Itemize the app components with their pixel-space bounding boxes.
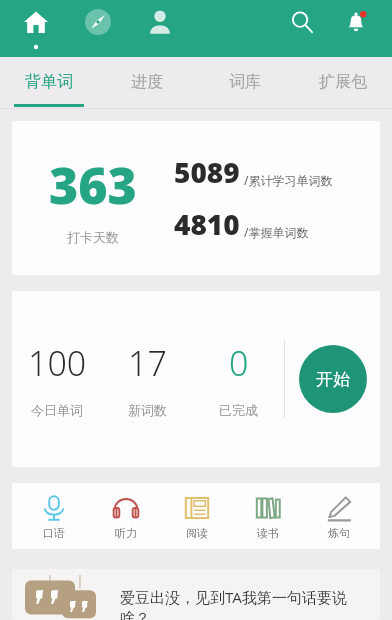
staticText: 17 xyxy=(128,340,167,386)
staticText: 已完成 xyxy=(219,402,258,418)
staticText: 爱豆出没，见到TA我第一句话要说啥？ xyxy=(120,587,370,620)
button[interactable]: Discover xyxy=(76,0,120,44)
button[interactable]: 词库 xyxy=(196,57,294,107)
staticText: 5089 xyxy=(174,153,240,191)
button[interactable]: 100 xyxy=(12,340,102,418)
button[interactable]: 进度 xyxy=(98,57,196,107)
staticText: 打卡天数 xyxy=(67,229,119,245)
button[interactable]: 口语 xyxy=(18,483,90,549)
staticText: /掌握单词数 xyxy=(244,224,309,240)
staticText: 读书 xyxy=(257,526,279,540)
staticText: 扩展包 xyxy=(319,72,367,92)
button[interactable]: 扩展包 xyxy=(294,57,392,107)
staticText: 阅读 xyxy=(186,526,208,540)
staticText: 新词数 xyxy=(128,402,167,418)
button[interactable]: 背单词 xyxy=(0,57,98,107)
staticText: 词库 xyxy=(229,72,261,92)
staticText: 口语 xyxy=(43,526,65,540)
staticText: 进度 xyxy=(131,72,163,92)
button[interactable]: 17 xyxy=(102,340,193,418)
staticText: 4810 xyxy=(174,205,240,243)
button[interactable]: 听力 xyxy=(90,483,161,549)
button[interactable]: Notifications xyxy=(334,0,378,44)
button[interactable]: 开始 xyxy=(299,345,367,413)
button[interactable]: Search xyxy=(280,0,324,44)
button[interactable]: 读书 xyxy=(232,483,303,549)
staticText: 听力 xyxy=(115,526,137,540)
staticText: 363 xyxy=(49,151,137,219)
staticText: 炼句 xyxy=(328,526,350,540)
button[interactable]: 363 xyxy=(12,121,380,275)
button[interactable]: 阅读 xyxy=(161,483,232,549)
button[interactable]: 炼句 xyxy=(303,483,374,549)
staticText: /累计学习单词数 xyxy=(244,172,333,188)
button[interactable]: Profile xyxy=(138,0,182,44)
button[interactable]: Home xyxy=(14,0,58,44)
staticText: 100 xyxy=(28,340,87,386)
staticText: 背单词 xyxy=(25,72,73,92)
button[interactable]: 爱豆出没，见到TA我第一句话要说啥？ xyxy=(12,569,380,620)
button[interactable]: 0 xyxy=(193,340,284,418)
staticText: 0 xyxy=(229,340,249,386)
staticText: 今日单词 xyxy=(31,402,83,418)
staticText: 开始 xyxy=(316,369,350,390)
